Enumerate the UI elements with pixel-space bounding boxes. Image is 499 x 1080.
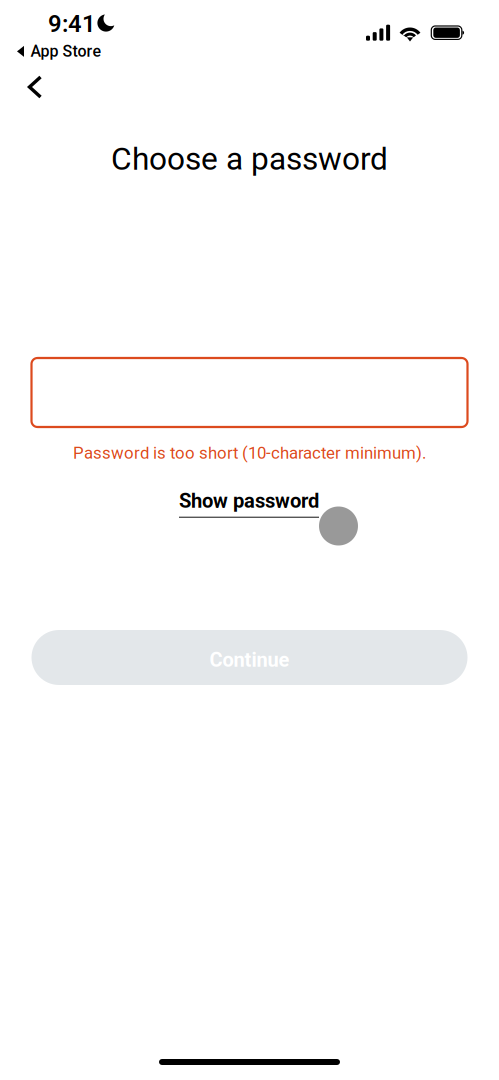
button[interactable]: Show password xyxy=(179,489,319,518)
staticText: App Store xyxy=(30,42,101,61)
staticText: Continue xyxy=(209,648,289,672)
staticText: 9:41 xyxy=(48,10,96,38)
staticText: Show password xyxy=(179,489,319,513)
staticText: Password is too short (10-character mini… xyxy=(73,443,426,463)
staticText: Choose a password xyxy=(111,140,388,177)
button[interactable]: Continue xyxy=(31,630,467,685)
button[interactable]: Back xyxy=(13,65,57,109)
